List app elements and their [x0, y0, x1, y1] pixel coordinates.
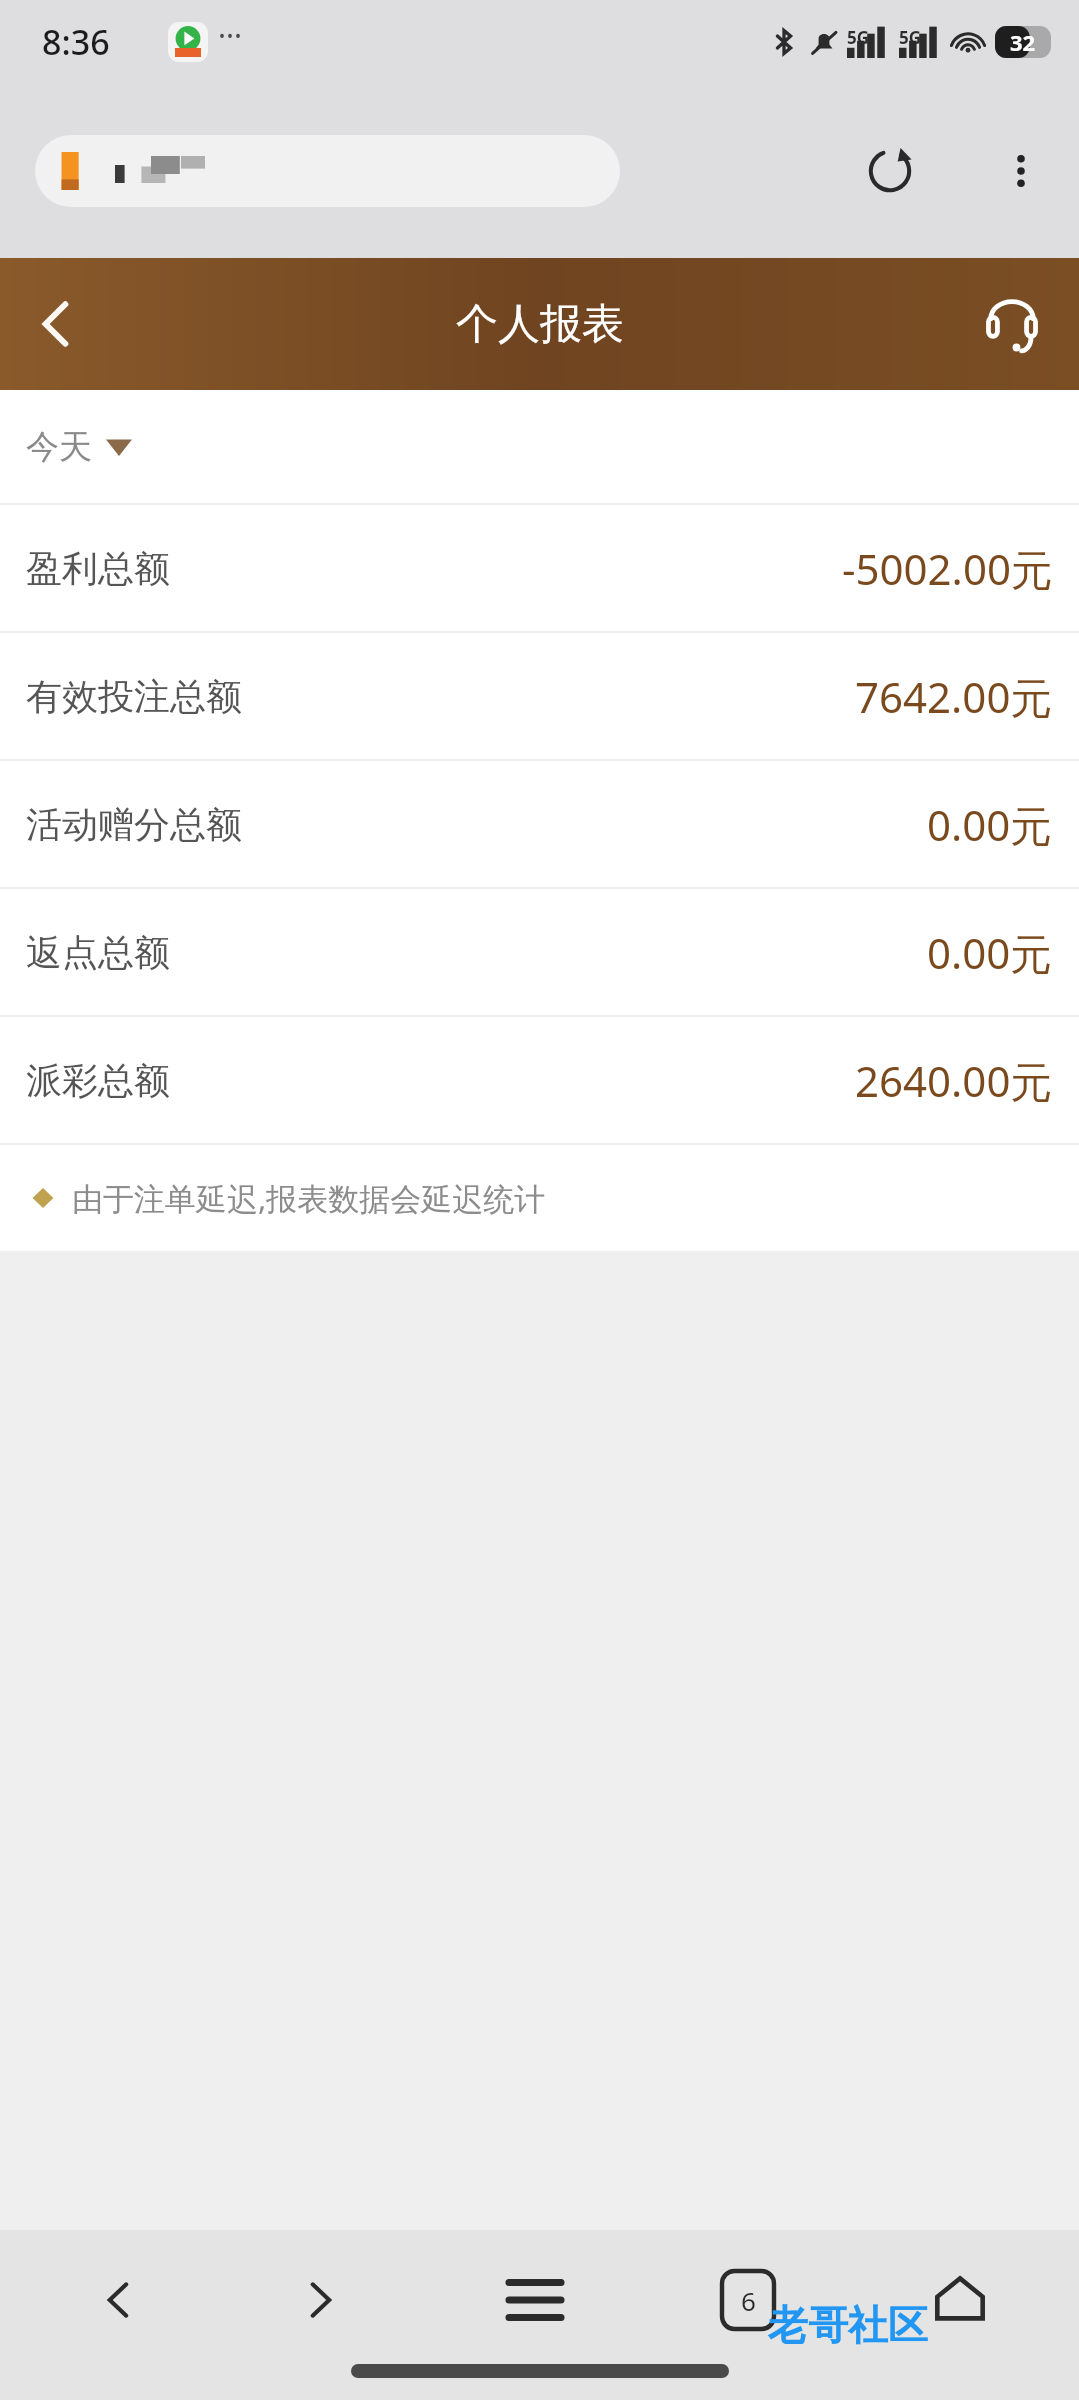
staticText: 8:36	[42, 19, 110, 65]
staticText: 有效投注总额	[26, 674, 242, 719]
button[interactable]: 活动赠分总额	[0, 761, 1079, 887]
staticText: ···	[218, 15, 243, 56]
staticText: 2640.00元	[855, 1052, 1053, 1109]
staticText: 老哥社区	[768, 2300, 928, 2350]
button[interactable]: More options	[985, 135, 1057, 207]
button[interactable]: Home	[912, 2252, 1008, 2348]
button[interactable]: Back	[70, 2252, 166, 2348]
staticText: 个人报表	[456, 298, 624, 351]
staticText: 活动赠分总额	[26, 802, 242, 847]
button[interactable]: 有效投注总额	[0, 633, 1079, 759]
staticText: 派彩总额	[26, 1058, 170, 1103]
staticText: 7642.00元	[855, 668, 1053, 725]
staticText: 5G	[899, 26, 922, 49]
staticText: 由于注单延迟,报表数据会延迟统计	[72, 1177, 546, 1219]
staticText: 6	[741, 2283, 756, 2318]
button[interactable]: Tabs: 6	[700, 2252, 796, 2348]
button[interactable]: 今天	[0, 390, 1079, 503]
staticText: 5G	[847, 26, 870, 49]
staticText: 返点总额	[26, 930, 170, 975]
staticText: -5002.00元	[842, 540, 1053, 597]
button[interactable]: Back	[8, 276, 104, 372]
button[interactable]: 返点总额	[0, 889, 1079, 1015]
button[interactable]: Reload	[850, 131, 930, 211]
staticText: 盈利总额	[26, 546, 170, 591]
staticText: 今天	[26, 426, 92, 468]
button[interactable]: 派彩总额	[0, 1017, 1079, 1143]
button[interactable]: 盈利总额	[0, 505, 1079, 631]
button[interactable]: Forward	[272, 2252, 368, 2348]
button[interactable]: Customer service	[967, 279, 1057, 369]
staticText: 0.00元	[927, 796, 1053, 853]
staticText: 0.00元	[927, 924, 1053, 981]
button[interactable]: Menu	[487, 2252, 583, 2348]
button[interactable]: Address bar	[35, 135, 620, 207]
staticText: 32	[1010, 27, 1036, 57]
